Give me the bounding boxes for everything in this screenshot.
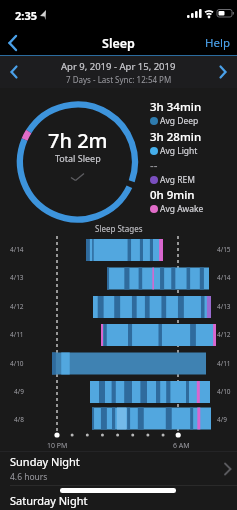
staticText: 4/9 [14, 387, 24, 396]
staticText: 10 PM [47, 441, 68, 451]
button[interactable]: Saturday Night [0, 486, 237, 510]
staticText: Apr 9, 2019 - Apr 15, 2019 [61, 60, 176, 73]
staticText: 4/13 [10, 273, 24, 282]
staticText: -- [150, 158, 158, 174]
staticText: 4/11 [10, 330, 24, 339]
staticText: 2:35 [15, 8, 37, 23]
staticText: Avg REM [160, 174, 195, 186]
staticText: Help [205, 35, 231, 51]
staticText: Sunday Night [10, 454, 80, 469]
staticText: 4/12 [217, 330, 231, 339]
staticText: 4/15 [217, 245, 231, 254]
staticText: 3h 34min [150, 99, 202, 115]
staticText: 3h 28min [150, 129, 202, 145]
staticText: 4/12 [10, 302, 24, 311]
staticText: 4/11 [217, 359, 231, 368]
staticText: Avg Deep [160, 115, 199, 127]
staticText: Sleep Stages [95, 223, 143, 234]
staticText: 4/8 [14, 415, 24, 424]
button[interactable] [209, 56, 237, 88]
staticText: 4/10 [217, 387, 231, 396]
staticText: Avg Awake [160, 203, 204, 215]
staticText: 4.6 hours [10, 471, 48, 483]
button[interactable]: Sunday Night [0, 452, 237, 485]
button[interactable]: Help [205, 35, 231, 51]
staticText: 7h 2m [48, 127, 108, 154]
staticText: Avg Light [160, 145, 198, 157]
staticText: 4/14 [217, 273, 231, 282]
staticText: 0h 9min [150, 187, 195, 203]
button[interactable] [0, 56, 28, 88]
staticText: 4/10 [10, 359, 24, 368]
staticText: Sleep [102, 35, 135, 52]
staticText: Total Sleep [55, 152, 101, 164]
staticText: 6 AM [173, 441, 190, 451]
button[interactable] [2, 30, 28, 56]
staticText: 4/14 [10, 245, 24, 254]
staticText: 7 Days - Last Sync: 12:54 PM [66, 74, 172, 85]
staticText: 4/9 [217, 415, 227, 424]
staticText: Saturday Night [10, 493, 88, 508]
staticText: 4/13 [217, 302, 231, 311]
